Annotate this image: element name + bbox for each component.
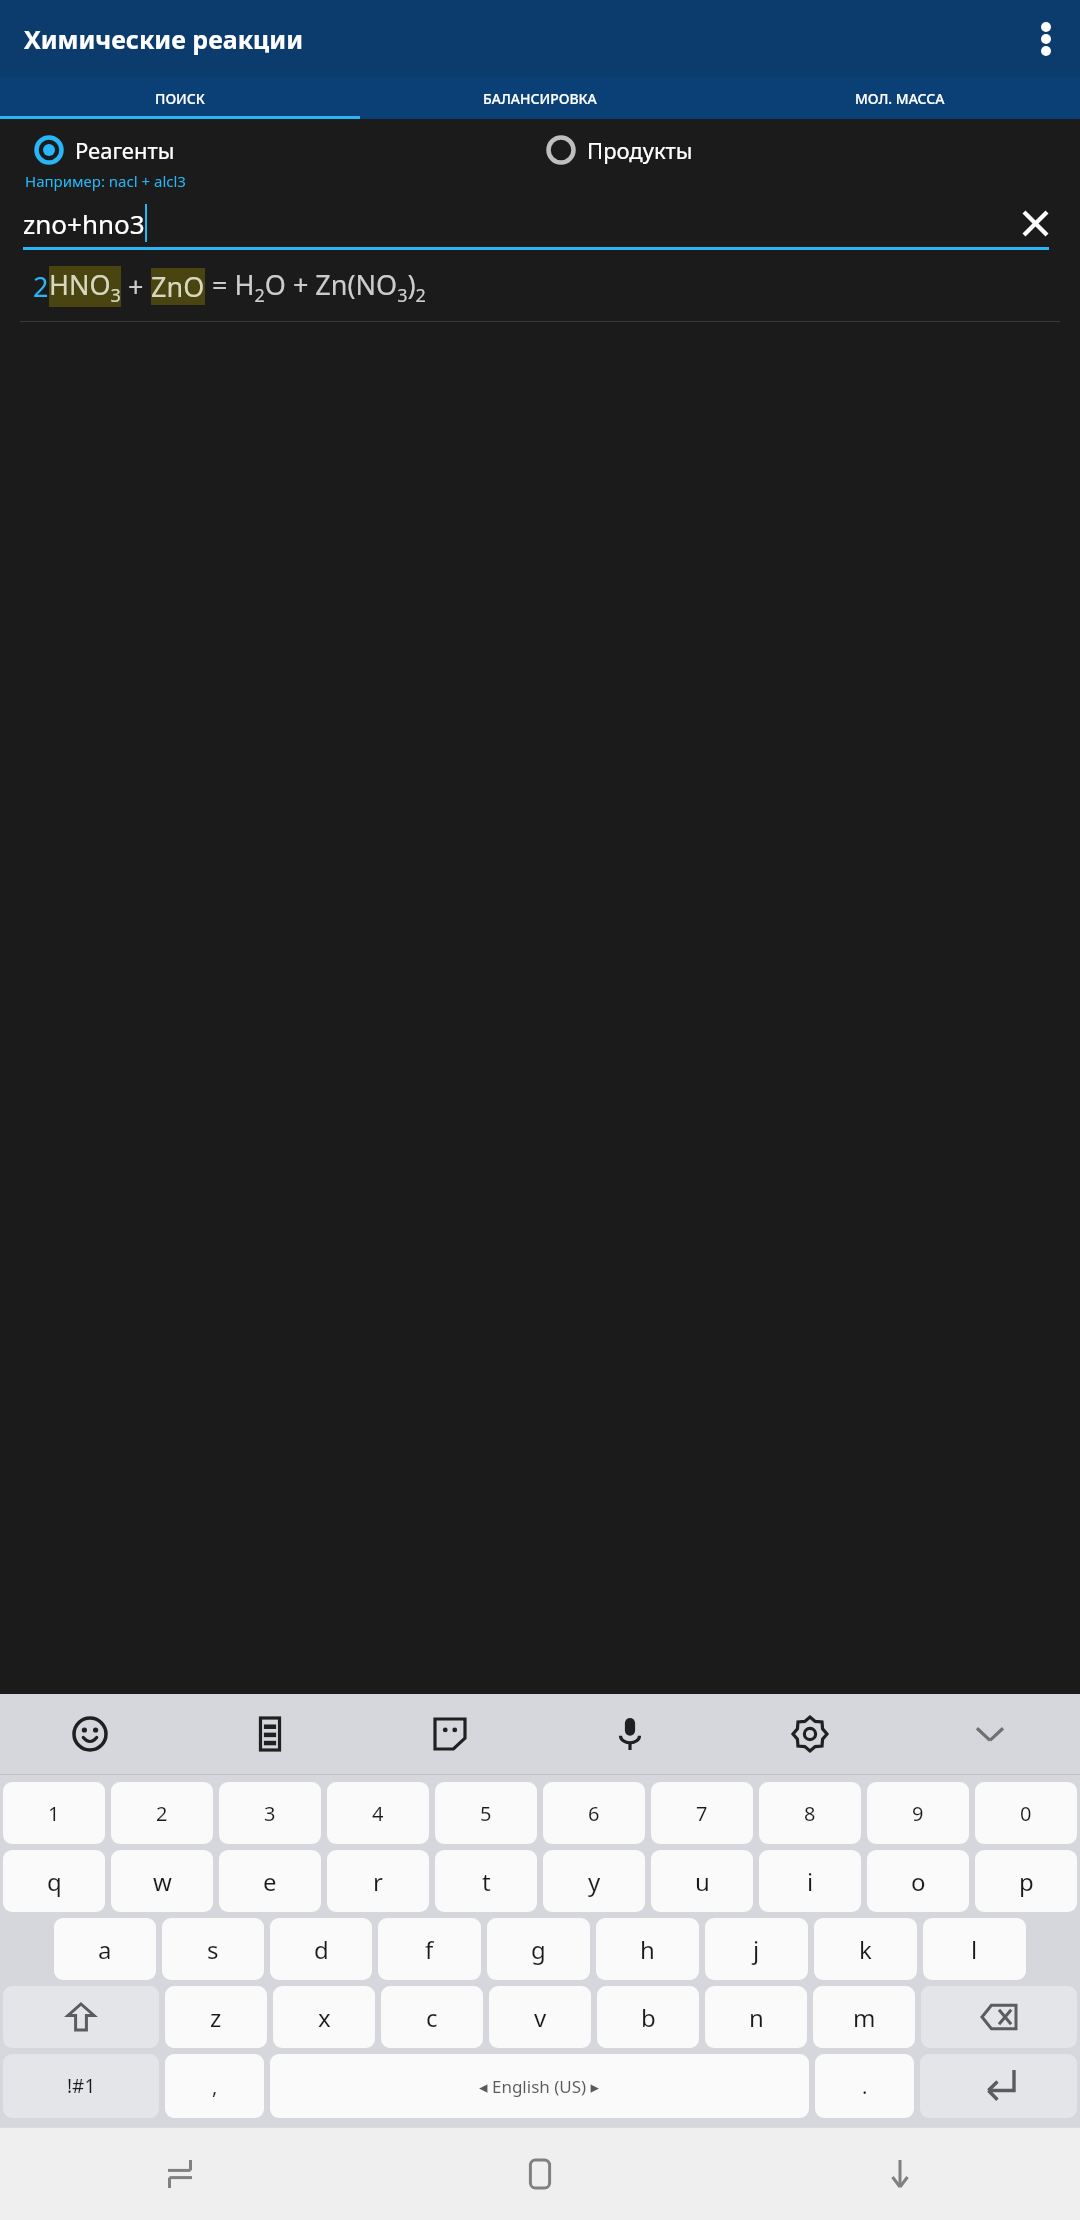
button[interactable]: 1 bbox=[3, 1782, 105, 1844]
button[interactable]: d bbox=[270, 1918, 372, 1980]
button[interactable]: 7 bbox=[651, 1782, 753, 1844]
staticText: e bbox=[263, 1865, 277, 1898]
button[interactable]: 0 bbox=[975, 1782, 1077, 1844]
button[interactable]: c bbox=[381, 1986, 483, 2048]
button[interactable]: Реагенты bbox=[34, 135, 540, 165]
staticText: b bbox=[641, 2001, 656, 2034]
button[interactable]: Settings bbox=[720, 1694, 900, 1774]
button[interactable]: БАЛАНСИРОВКА bbox=[360, 77, 720, 119]
staticText: a bbox=[98, 1933, 112, 1966]
button[interactable]: j bbox=[705, 1918, 808, 1980]
button[interactable]: t bbox=[435, 1850, 537, 1912]
staticText: d bbox=[314, 1933, 329, 1966]
button[interactable]: 5 bbox=[435, 1782, 537, 1844]
button[interactable]: 9 bbox=[867, 1782, 969, 1844]
button[interactable]: . bbox=[815, 2054, 914, 2118]
button[interactable]: g bbox=[487, 1918, 590, 1980]
staticText: j bbox=[753, 1933, 760, 1966]
button[interactable]: u bbox=[651, 1850, 753, 1912]
staticText: q bbox=[47, 1865, 62, 1898]
staticText: 9 bbox=[912, 1800, 924, 1827]
button[interactable]: 6 bbox=[543, 1782, 645, 1844]
staticText: = H2O + Zn(NO3)2 bbox=[205, 266, 426, 307]
button[interactable]: m bbox=[813, 1986, 915, 2048]
staticText: !#1 bbox=[67, 2073, 96, 2099]
button[interactable]: !#1 bbox=[3, 2054, 159, 2118]
button[interactable]: f bbox=[378, 1918, 481, 1980]
staticText: f bbox=[425, 1933, 434, 1966]
button[interactable]: Shift bbox=[3, 1986, 159, 2048]
staticText: ZnO bbox=[151, 268, 205, 305]
button[interactable]: i bbox=[759, 1850, 861, 1912]
button[interactable]: Recents bbox=[0, 2128, 360, 2220]
staticText: k bbox=[859, 1933, 872, 1966]
button[interactable]: 4 bbox=[327, 1782, 429, 1844]
button[interactable]: Продукты bbox=[546, 135, 1080, 165]
staticText: v bbox=[534, 2001, 547, 2034]
staticText: Химические реакции bbox=[24, 22, 304, 56]
staticText: x bbox=[318, 2001, 331, 2034]
staticText: 5 bbox=[480, 1800, 492, 1827]
button[interactable]: 2 bbox=[111, 1782, 213, 1844]
button[interactable]: o bbox=[867, 1850, 969, 1912]
staticText: 6 bbox=[588, 1800, 600, 1827]
button[interactable]: Hide keyboard bbox=[900, 1694, 1080, 1774]
staticText: , bbox=[212, 2073, 218, 2100]
staticText: s bbox=[207, 1933, 219, 1966]
button[interactable]: Stickers bbox=[360, 1694, 540, 1774]
button[interactable]: n bbox=[705, 1986, 807, 2048]
button[interactable]: y bbox=[543, 1850, 645, 1912]
staticText: 2 bbox=[33, 268, 49, 305]
staticText: ПОИСК bbox=[155, 89, 205, 108]
staticText: n bbox=[749, 2001, 764, 2034]
button[interactable]: r bbox=[327, 1850, 429, 1912]
button[interactable]: p bbox=[975, 1850, 1077, 1912]
button[interactable]: b bbox=[597, 1986, 699, 2048]
button[interactable]: s bbox=[162, 1918, 264, 1980]
button[interactable]: МОЛ. МАССА bbox=[720, 77, 1080, 119]
staticText: m bbox=[853, 2001, 876, 2034]
button[interactable]: x bbox=[273, 1986, 375, 2048]
staticText: + bbox=[121, 268, 151, 305]
staticText: zno+hno3 bbox=[23, 206, 145, 241]
staticText: БАЛАНСИРОВКА bbox=[483, 89, 597, 108]
button[interactable]: ◂ English (US) ▸ bbox=[270, 2054, 809, 2118]
button[interactable]: Clipboard bbox=[180, 1694, 360, 1774]
staticText: g bbox=[531, 1933, 546, 1966]
button[interactable]: 3 bbox=[219, 1782, 321, 1844]
button[interactable]: w bbox=[111, 1850, 213, 1912]
button[interactable]: , bbox=[165, 2054, 264, 2118]
staticText: r bbox=[373, 1865, 383, 1898]
button[interactable]: v bbox=[489, 1986, 591, 2048]
staticText: 7 bbox=[696, 1800, 708, 1827]
button[interactable]: Home bbox=[360, 2128, 720, 2220]
staticText: y bbox=[588, 1865, 601, 1898]
button[interactable]: q bbox=[3, 1850, 105, 1912]
button[interactable]: Clear bbox=[1013, 201, 1057, 245]
staticText: 1 bbox=[48, 1800, 60, 1827]
button[interactable]: l bbox=[923, 1918, 1026, 1980]
button[interactable]: e bbox=[219, 1850, 321, 1912]
button[interactable]: Voice input bbox=[540, 1694, 720, 1774]
button[interactable]: a bbox=[54, 1918, 156, 1980]
button[interactable]: h bbox=[596, 1918, 699, 1980]
staticText: HNO3 bbox=[49, 266, 121, 307]
staticText: 4 bbox=[372, 1800, 384, 1827]
staticText: Продукты bbox=[587, 135, 693, 165]
button[interactable]: More options bbox=[1012, 0, 1080, 77]
staticText: z bbox=[210, 2001, 222, 2034]
staticText: w bbox=[153, 1865, 172, 1898]
button[interactable]: k bbox=[814, 1918, 917, 1980]
staticText: h bbox=[640, 1933, 655, 1966]
staticText: 2 bbox=[156, 1800, 168, 1827]
button[interactable]: Emoji bbox=[0, 1694, 180, 1774]
button[interactable]: Enter bbox=[920, 2054, 1077, 2118]
button[interactable]: Back bbox=[720, 2128, 1080, 2220]
staticText: 8 bbox=[804, 1800, 816, 1827]
button[interactable]: 8 bbox=[759, 1782, 861, 1844]
button[interactable]: Backspace bbox=[921, 1986, 1077, 2048]
button[interactable]: z bbox=[165, 1986, 267, 2048]
button[interactable]: ПОИСК bbox=[0, 77, 360, 119]
staticText: i bbox=[807, 1865, 814, 1898]
staticText: p bbox=[1019, 1865, 1034, 1898]
